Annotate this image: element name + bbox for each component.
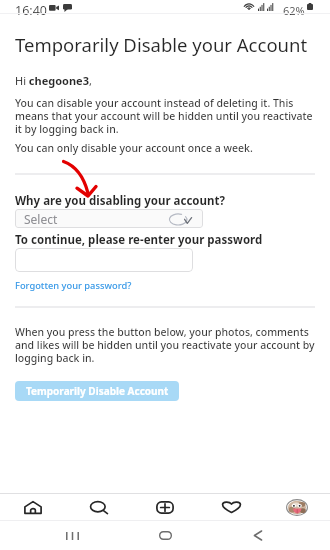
staticText: You can disable your account instead of …	[15, 96, 315, 137]
button[interactable]: Temporarily Disable Account	[15, 381, 179, 401]
button[interactable]: Select	[15, 209, 203, 228]
button[interactable]: Create	[132, 494, 198, 520]
staticText: To continue, please re-enter your passwo…	[15, 232, 263, 248]
button[interactable]: Activity	[198, 494, 264, 520]
button[interactable]: Home	[151, 521, 179, 550]
button[interactable]	[15, 248, 193, 272]
staticText: Why are you disabling your account?	[15, 193, 225, 209]
button[interactable]: Home	[0, 494, 66, 520]
button[interactable]: Forgotten your password?	[15, 279, 132, 292]
staticText: Temporarily Disable Account	[26, 384, 169, 398]
staticText: 16:40	[15, 2, 47, 19]
button[interactable]: Recents	[58, 521, 86, 550]
button[interactable]: Profile	[264, 494, 330, 520]
staticText: Temporarily Disable your Account	[15, 32, 308, 57]
button[interactable]: Search	[66, 494, 132, 520]
staticText: 62%	[283, 3, 305, 18]
staticText: Hi chegoone3,	[15, 73, 92, 88]
staticText: Select	[24, 211, 58, 227]
button[interactable]: Back	[244, 521, 272, 550]
staticText: You can only disable your account once a…	[15, 141, 253, 155]
staticText: When you press the button below, your ph…	[15, 325, 315, 366]
